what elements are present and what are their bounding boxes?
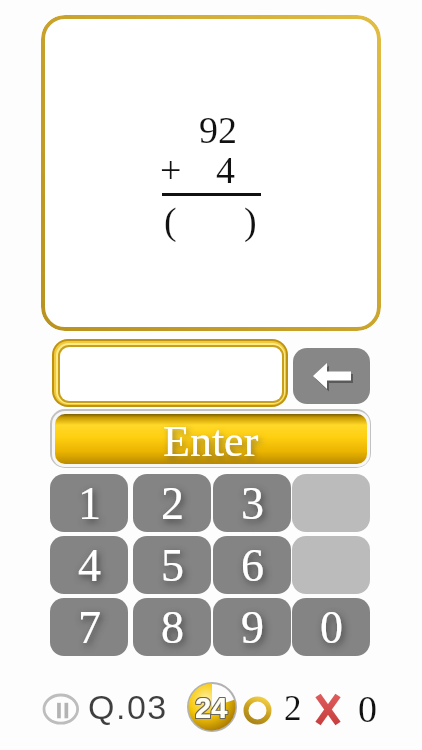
staticText: 24 (194, 692, 227, 724)
staticText: 9 (241, 602, 264, 653)
staticText: 0 (320, 602, 343, 653)
staticText: 3 (241, 478, 264, 529)
button[interactable]: 3 (213, 474, 291, 532)
staticText: 2 (284, 689, 302, 728)
button[interactable]: 1 (50, 474, 128, 532)
staticText: 24 (195, 691, 228, 723)
staticText: 1 (78, 478, 101, 529)
button[interactable]: Enter (50, 409, 371, 468)
button[interactable]: 2 (133, 474, 211, 532)
staticText: 6 (241, 540, 264, 591)
staticText: + (160, 149, 182, 191)
staticText: ) (244, 200, 257, 242)
staticText: 4 (216, 149, 235, 191)
button[interactable]: 5 (133, 536, 211, 594)
staticText: 0 (358, 688, 377, 730)
button[interactable]: 9 (213, 598, 291, 656)
button[interactable] (293, 348, 370, 404)
staticText: 7 (78, 602, 101, 653)
staticText: 24 (195, 692, 228, 724)
button[interactable]: 7 (50, 598, 128, 656)
staticText: 24 (194, 693, 227, 725)
button[interactable]: 0 (292, 598, 370, 656)
staticText: 24 (195, 693, 228, 725)
button[interactable]: 6 (213, 536, 291, 594)
staticText: 8 (161, 602, 184, 653)
button[interactable] (292, 536, 370, 594)
staticText: 4 (78, 540, 101, 591)
button[interactable] (42, 693, 80, 727)
staticText: 24 (196, 692, 229, 724)
button[interactable] (292, 474, 370, 532)
button[interactable] (52, 339, 288, 407)
button[interactable]: 4 (50, 536, 128, 594)
staticText: Q.03 (88, 688, 168, 726)
staticText: 92 (199, 109, 237, 151)
staticText: 24 (196, 693, 229, 725)
staticText: ( (164, 200, 177, 242)
staticText: 2 (161, 478, 184, 529)
staticText: 24 (196, 691, 229, 723)
staticText: 24 (194, 691, 227, 723)
staticText: Enter (163, 417, 259, 464)
staticText: 5 (161, 540, 184, 591)
button[interactable]: 8 (133, 598, 211, 656)
